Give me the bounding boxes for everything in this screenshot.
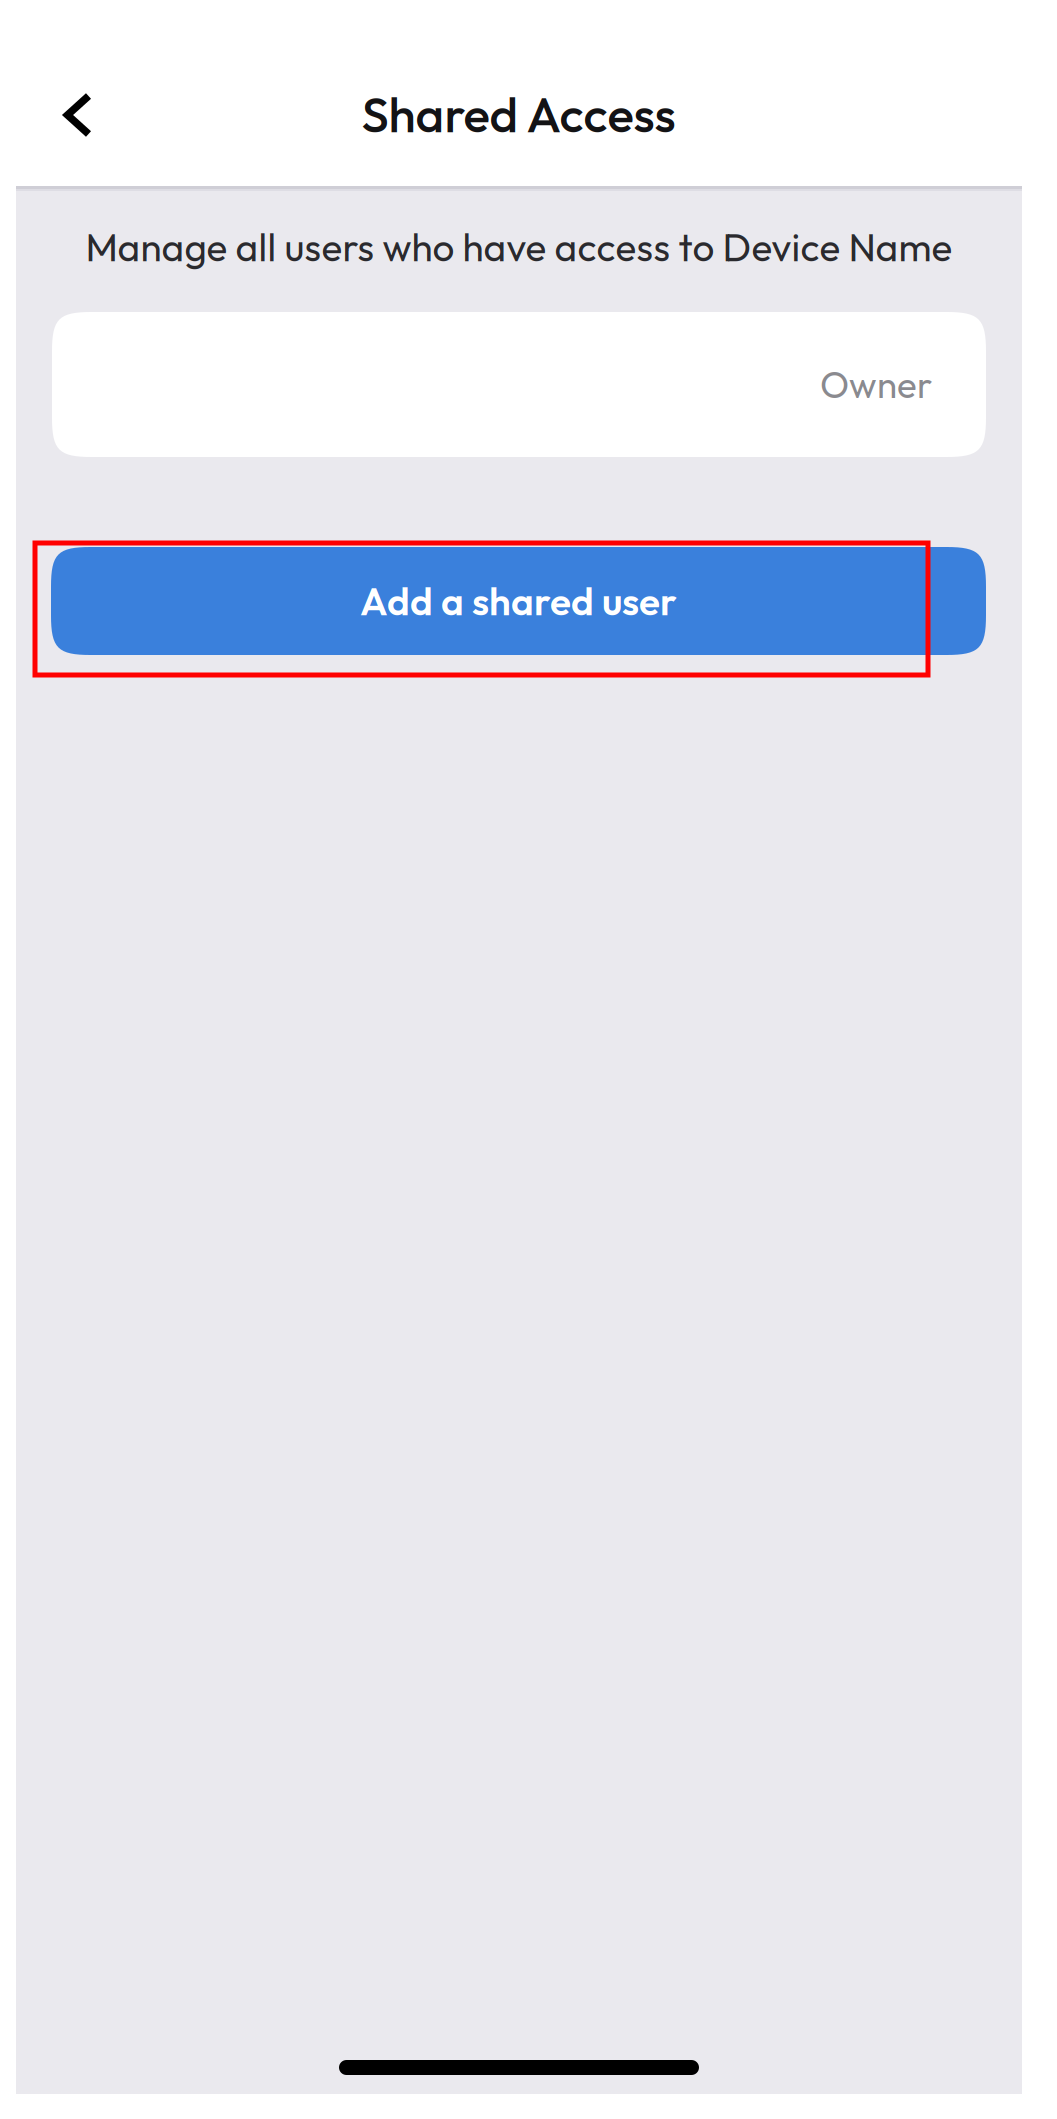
staticText: Owner	[820, 361, 932, 408]
button[interactable]: Back	[23, 60, 133, 170]
staticText: Manage all users who have access to Devi…	[85, 223, 952, 271]
staticText: Shared Access	[361, 83, 675, 145]
button[interactable]: Add a shared user	[51, 547, 986, 655]
staticText: Add a shared user	[360, 577, 677, 625]
